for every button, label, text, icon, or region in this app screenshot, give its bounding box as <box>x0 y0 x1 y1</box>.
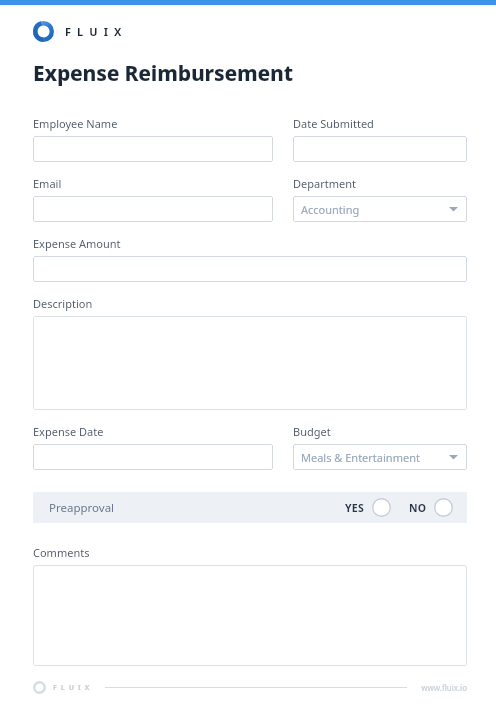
button[interactable] <box>33 196 273 222</box>
button[interactable] <box>33 316 467 410</box>
button[interactable] <box>33 136 273 162</box>
button[interactable]: Meals & Entertainment <box>293 444 467 470</box>
button[interactable] <box>33 444 273 470</box>
staticText: Expense Reimbursement <box>33 59 293 88</box>
button[interactable] <box>293 136 467 162</box>
staticText: Accounting <box>301 202 449 217</box>
button[interactable]: YES <box>345 498 391 517</box>
other: Fluix logo <box>33 681 46 694</box>
staticText: Meals & Entertainment <box>301 450 449 465</box>
button[interactable]: Accounting <box>293 196 467 222</box>
staticText: Email <box>33 176 62 191</box>
other: Select option <box>434 498 453 517</box>
other: Fluix logo <box>33 21 54 42</box>
staticText: NO <box>409 501 427 515</box>
button[interactable] <box>33 256 467 282</box>
staticText: Expense Date <box>33 424 104 439</box>
staticText: Date Submitted <box>293 116 374 131</box>
staticText: Description <box>33 296 93 311</box>
staticText: F L U I X <box>53 683 91 693</box>
staticText: Expense Amount <box>33 236 121 251</box>
staticText: Employee Name <box>33 116 118 131</box>
button[interactable]: NO <box>409 498 453 517</box>
other: Select option <box>372 498 391 517</box>
staticText: Preapproval <box>49 500 345 516</box>
button[interactable]: Fluix logo <box>33 21 123 42</box>
button[interactable] <box>33 565 467 666</box>
staticText: Comments <box>33 545 90 560</box>
staticText: www.fluix.io <box>421 682 467 693</box>
staticText: F L U I X <box>65 24 123 39</box>
staticText: Budget <box>293 424 331 439</box>
staticText: YES <box>345 501 365 515</box>
staticText: Department <box>293 176 356 191</box>
